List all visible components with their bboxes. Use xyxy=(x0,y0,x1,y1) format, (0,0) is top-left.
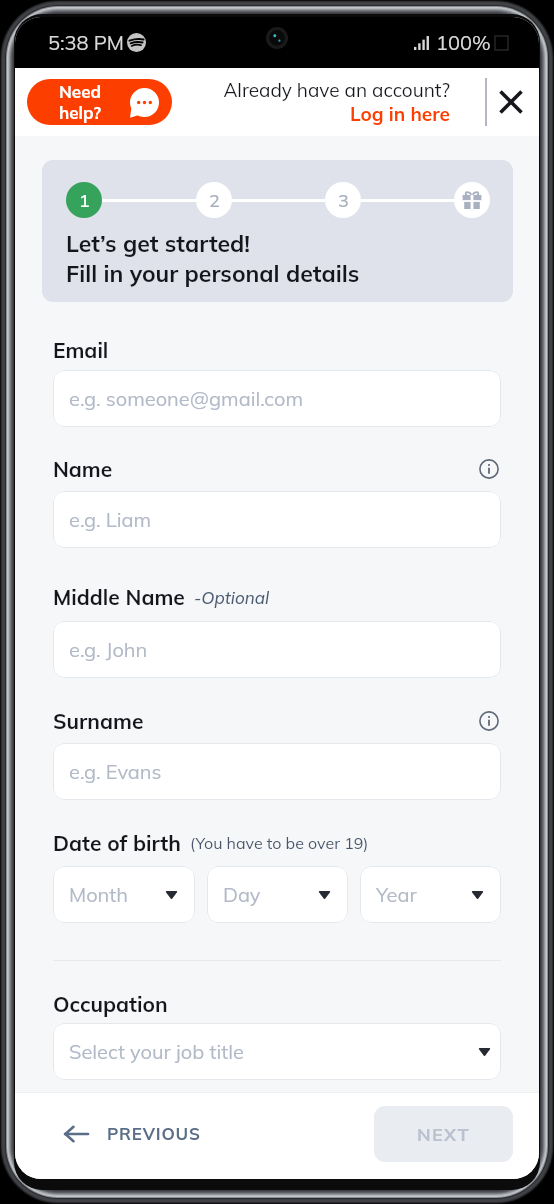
staticText: NEXT xyxy=(417,1123,471,1146)
button[interactable]: Month xyxy=(53,866,195,923)
button[interactable]: Need xyxy=(27,79,172,125)
staticText: 2 xyxy=(209,189,220,212)
staticText: Fill in your personal details xyxy=(66,259,360,288)
staticText: Log in here xyxy=(349,102,450,126)
staticText: (You have to be over 19) xyxy=(190,833,369,853)
staticText: Name xyxy=(53,456,113,482)
staticText: 5:38 PM xyxy=(48,30,124,55)
button[interactable]: 1 xyxy=(66,182,102,218)
button[interactable]: e.g. Evans xyxy=(53,743,501,800)
staticText: e.g. Evans xyxy=(69,759,162,784)
button[interactable]: Already have an account? xyxy=(216,78,450,126)
button[interactable]: Select your job title xyxy=(53,1023,501,1080)
button[interactable]: Day xyxy=(207,866,348,923)
staticText: Surname xyxy=(53,708,144,734)
staticText: 1 xyxy=(79,189,90,212)
staticText: Let’s get started! xyxy=(66,229,251,258)
button[interactable]: More info xyxy=(477,457,501,481)
button[interactable]: e.g. John xyxy=(53,621,501,678)
button[interactable]: Rewards xyxy=(454,182,490,218)
staticText: -Optional xyxy=(194,587,270,608)
staticText: Middle Name xyxy=(53,584,185,610)
button[interactable]: NEXT xyxy=(374,1106,513,1162)
staticText: Email xyxy=(53,337,109,363)
staticText: Select your job title xyxy=(69,1039,244,1064)
staticText: Year xyxy=(376,882,417,907)
staticText: Need xyxy=(59,81,102,102)
button[interactable]: e.g. someone@gmail.com xyxy=(53,370,501,427)
button[interactable]: e.g. Liam xyxy=(53,491,501,548)
staticText: Already have an account? xyxy=(223,78,450,102)
staticText: 3 xyxy=(338,189,349,212)
staticText: Month xyxy=(69,882,129,907)
button[interactable]: Year xyxy=(360,866,501,923)
button[interactable]: Close xyxy=(487,78,535,126)
staticText: Date of birth xyxy=(53,830,181,856)
staticText: 100% xyxy=(436,30,491,55)
staticText: PREVIOUS xyxy=(107,1123,201,1144)
staticText: e.g. someone@gmail.com xyxy=(69,386,303,411)
button[interactable]: More info xyxy=(477,709,501,733)
staticText: help? xyxy=(59,102,102,123)
staticText: e.g. Liam xyxy=(69,507,152,532)
staticText: Occupation xyxy=(53,991,168,1017)
button[interactable]: PREVIOUS xyxy=(64,1123,201,1144)
button[interactable]: 2 xyxy=(196,182,232,218)
staticText: e.g. John xyxy=(69,637,148,662)
staticText: Day xyxy=(223,882,261,907)
button[interactable]: 3 xyxy=(325,182,361,218)
